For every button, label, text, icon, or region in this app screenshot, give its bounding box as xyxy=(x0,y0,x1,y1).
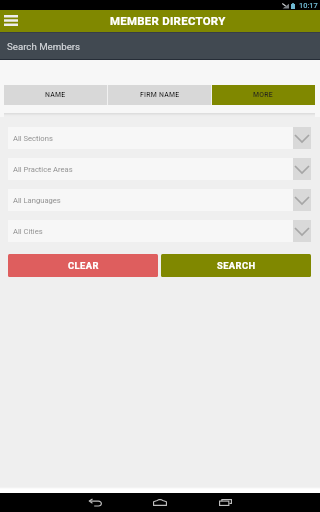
button[interactable]: FIRM NAME xyxy=(108,85,211,105)
staticText: MEMBER DIRECTORY xyxy=(110,14,226,27)
staticText: All Sections xyxy=(13,134,293,143)
staticText: All Practice Areas xyxy=(13,165,293,174)
staticText: SEARCH xyxy=(217,260,256,271)
button[interactable]: Back xyxy=(80,493,110,512)
button[interactable]: SEARCH xyxy=(161,254,311,277)
staticText: FIRM NAME xyxy=(140,91,180,99)
staticText: 10:17 xyxy=(299,1,318,10)
button[interactable]: Search Members xyxy=(0,32,320,60)
button[interactable]: Recent apps xyxy=(210,493,240,512)
button[interactable]: All Cities xyxy=(8,220,311,242)
staticText: All Languages xyxy=(13,196,293,205)
button[interactable]: All Practice Areas xyxy=(8,158,311,180)
staticText: MORE xyxy=(253,91,274,99)
staticText: CLEAR xyxy=(68,260,99,271)
staticText: Search Members xyxy=(7,41,81,52)
button[interactable]: NAME xyxy=(4,85,107,105)
button[interactable]: CLEAR xyxy=(8,254,158,277)
button[interactable]: Open navigation drawer xyxy=(0,10,22,32)
button[interactable]: Home xyxy=(145,493,175,512)
staticText: All Cities xyxy=(13,227,293,236)
button[interactable]: MORE xyxy=(212,85,315,105)
button[interactable]: All Languages xyxy=(8,189,311,211)
staticText: NAME xyxy=(45,91,66,99)
button[interactable]: All Sections xyxy=(8,127,311,149)
